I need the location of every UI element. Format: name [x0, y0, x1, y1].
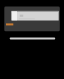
- button[interactable]: Media card: [0, 0, 64, 79]
- other: Media card: [0, 0, 64, 79]
